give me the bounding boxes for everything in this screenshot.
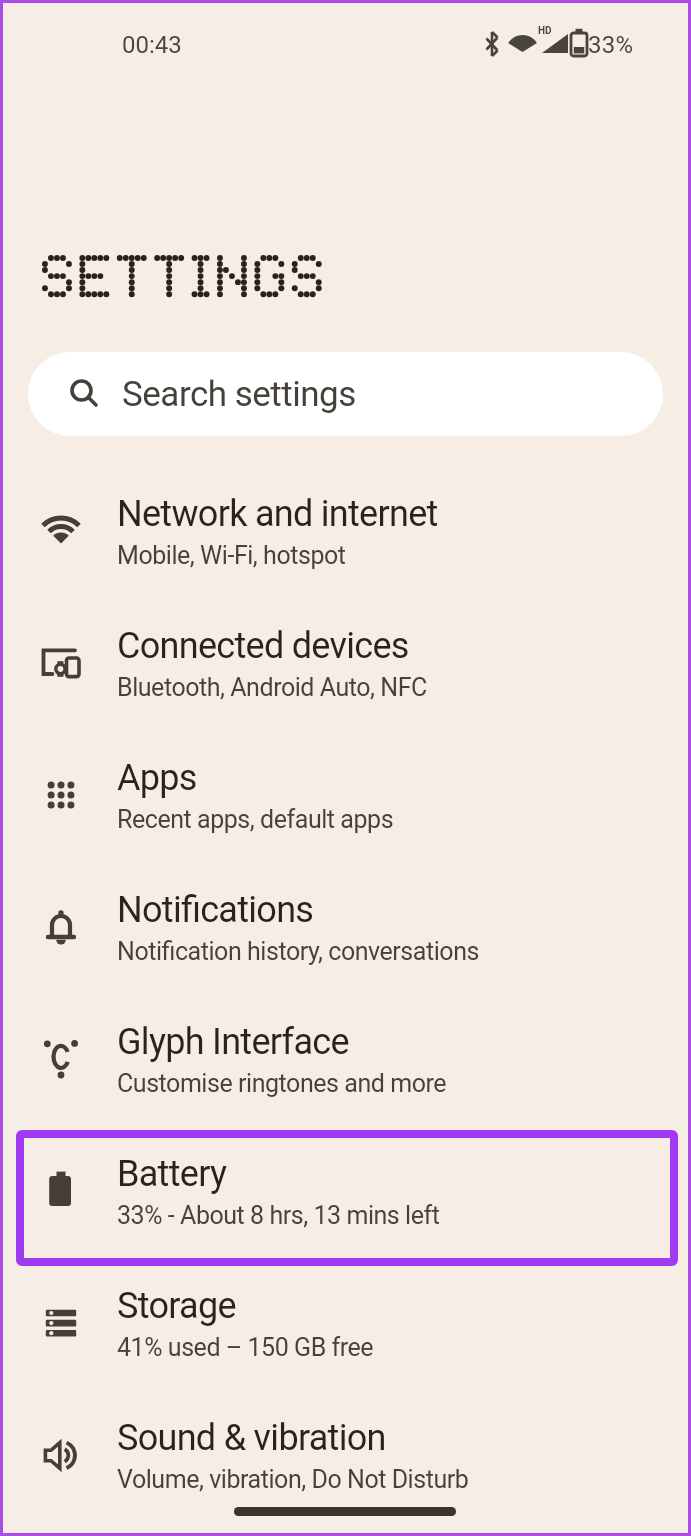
staticText: Connected devices [117, 625, 409, 667]
staticText: Notification history, conversations [117, 937, 479, 966]
button[interactable]: Glyph Interface [0, 993, 691, 1125]
staticText: Recent apps, default apps [117, 805, 394, 834]
staticText: Mobile, Wi-Fi, hotspot [117, 541, 346, 570]
staticText: Volume, vibration, Do Not Disturb [117, 1465, 469, 1494]
staticText: 33% - About 8 hrs, 13 mins left [117, 1201, 440, 1230]
staticText: HD [538, 25, 552, 37]
button[interactable]: Apps [0, 729, 691, 861]
staticText: Notifications [117, 889, 314, 931]
button[interactable]: Battery [0, 1125, 691, 1257]
staticText: Glyph Interface [117, 1021, 349, 1063]
button[interactable]: Storage [0, 1257, 691, 1389]
button[interactable]: Notifications [0, 861, 691, 993]
staticText: Network and internet [117, 493, 438, 535]
staticText: 33% [588, 31, 634, 59]
button[interactable] [234, 1507, 456, 1516]
staticText: Storage [117, 1285, 236, 1327]
staticText: Apps [117, 757, 197, 799]
button[interactable]: Connected devices [0, 597, 691, 729]
staticText: Customise ringtones and more [117, 1069, 447, 1098]
staticText: Sound & vibration [117, 1417, 386, 1459]
staticText: Search settings [122, 374, 356, 415]
staticText: 00:43 [122, 31, 182, 59]
staticText: 41% used – 150 GB free [117, 1333, 374, 1362]
button[interactable]: Search settings [28, 352, 663, 436]
staticText: Battery [117, 1153, 227, 1195]
button[interactable]: Network and internet [0, 465, 691, 597]
button[interactable]: Sound & vibration [0, 1389, 691, 1521]
staticText: Bluetooth, Android Auto, NFC [117, 673, 427, 702]
